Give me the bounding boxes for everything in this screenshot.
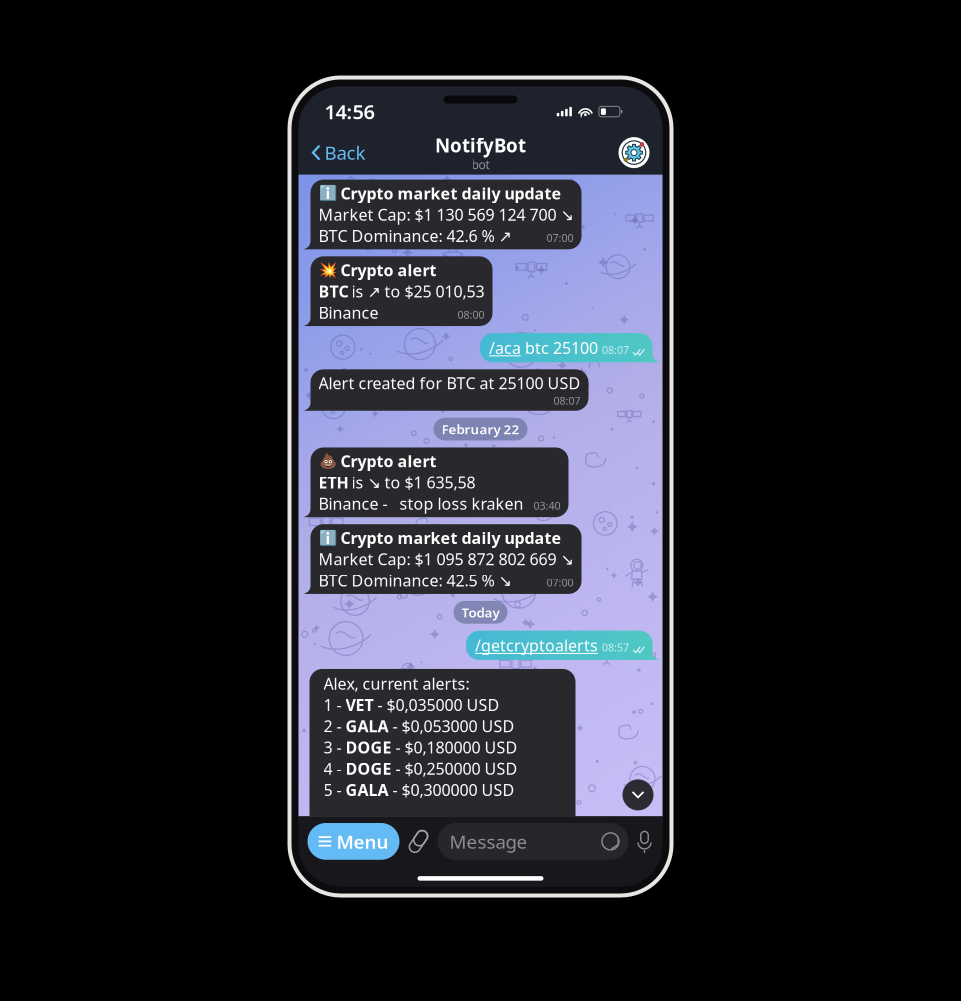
button[interactable]: ℹ️ xyxy=(303,524,581,594)
staticText: NotifyBot xyxy=(435,133,526,158)
button[interactable]: 💥 xyxy=(303,256,492,326)
button[interactable]: /getcryptoalerts xyxy=(466,631,659,660)
staticText: bot xyxy=(471,157,489,173)
staticText: BTC Dominance: 42.6 % ↗ xyxy=(318,225,511,246)
staticText: 08:07 xyxy=(553,394,580,408)
button[interactable]: ℹ️ xyxy=(303,180,581,249)
staticText: BTC Dominance: 42.5 % ↘ xyxy=(318,570,511,591)
staticText: Alex, current alerts: xyxy=(323,673,469,694)
staticText: February 22 xyxy=(441,420,519,438)
button[interactable]: Alert created for BTC at 25100 USD xyxy=(303,369,588,411)
staticText: /aca xyxy=(489,337,521,358)
staticText: 4 xyxy=(323,758,332,779)
staticText: btc 25100 xyxy=(521,337,598,358)
staticText: - xyxy=(332,715,345,737)
staticText: ETH xyxy=(318,472,348,493)
staticText: Crypto market daily update xyxy=(340,527,561,548)
staticText: DOGE xyxy=(345,737,391,758)
staticText: Market Cap: $1 130 569 124 700 ↘ xyxy=(318,204,573,225)
staticText: DOGE xyxy=(345,758,391,779)
button[interactable]: /aca xyxy=(480,333,659,362)
staticText: Message xyxy=(449,829,527,854)
button[interactable]: Back xyxy=(311,134,371,171)
staticText: 3 xyxy=(323,737,332,758)
staticText: - xyxy=(332,694,345,715)
staticText: 07:00 xyxy=(546,575,573,589)
staticText: Menu xyxy=(336,829,388,854)
button[interactable]: 💩 xyxy=(303,447,568,517)
staticText: Alert created for BTC at 25100 USD xyxy=(318,372,580,393)
staticText: - xyxy=(332,758,345,779)
staticText: BTC xyxy=(318,281,348,302)
staticText: 1 xyxy=(323,694,332,715)
staticText: Crypto market daily update xyxy=(340,183,561,204)
staticText: 14:56 xyxy=(324,98,374,125)
staticText: GALA xyxy=(345,715,388,737)
staticText: 💩 xyxy=(318,453,336,469)
staticText: - $0,250000 USD xyxy=(391,758,517,779)
staticText: GALA xyxy=(345,779,388,800)
staticText: Binance xyxy=(318,302,378,323)
staticText: 2 xyxy=(323,715,332,737)
staticText: 5 xyxy=(323,779,332,800)
staticText: - xyxy=(332,737,345,758)
staticText: 08:00 xyxy=(457,307,484,322)
staticText: Market Cap: $1 095 872 802 669 ↘ xyxy=(318,548,573,570)
staticText: Binance - stop loss kraken xyxy=(318,493,523,514)
staticText: /getcryptoalerts xyxy=(475,635,598,656)
button[interactable]: Message xyxy=(437,823,628,860)
staticText: Back xyxy=(324,140,365,165)
staticText: 08:07 xyxy=(602,343,629,357)
button[interactable]: Scroll to bottom xyxy=(622,779,653,810)
staticText: 💥 xyxy=(318,262,336,278)
staticText: VET xyxy=(345,694,373,715)
staticText: - $0,300000 USD xyxy=(388,779,514,800)
staticText: Crypto alert xyxy=(340,450,436,472)
staticText: Today xyxy=(461,603,499,621)
button[interactable]: Menu xyxy=(307,823,399,860)
button[interactable]: Bot settings xyxy=(618,137,649,168)
staticText: 07:00 xyxy=(546,231,573,245)
staticText: - xyxy=(332,779,345,800)
staticText: 08:57 xyxy=(602,640,629,654)
button[interactable]: Record voice message xyxy=(635,829,653,853)
button[interactable]: Attach file xyxy=(406,828,430,854)
staticText: - $0,180000 USD xyxy=(391,737,517,758)
staticText: - $0,035000 USD xyxy=(373,694,499,715)
button[interactable]: Alex, current alerts: xyxy=(309,669,575,816)
staticText: ℹ️ xyxy=(318,185,336,202)
staticText: - $0,053000 USD xyxy=(388,715,514,737)
staticText: is ↗ to $25 010,53 xyxy=(351,281,484,302)
staticText: ℹ️ xyxy=(318,529,336,546)
staticText: Crypto alert xyxy=(340,259,436,281)
staticText: 03:40 xyxy=(533,498,560,513)
staticText: is ↘ to $1 635,58 xyxy=(351,472,475,493)
